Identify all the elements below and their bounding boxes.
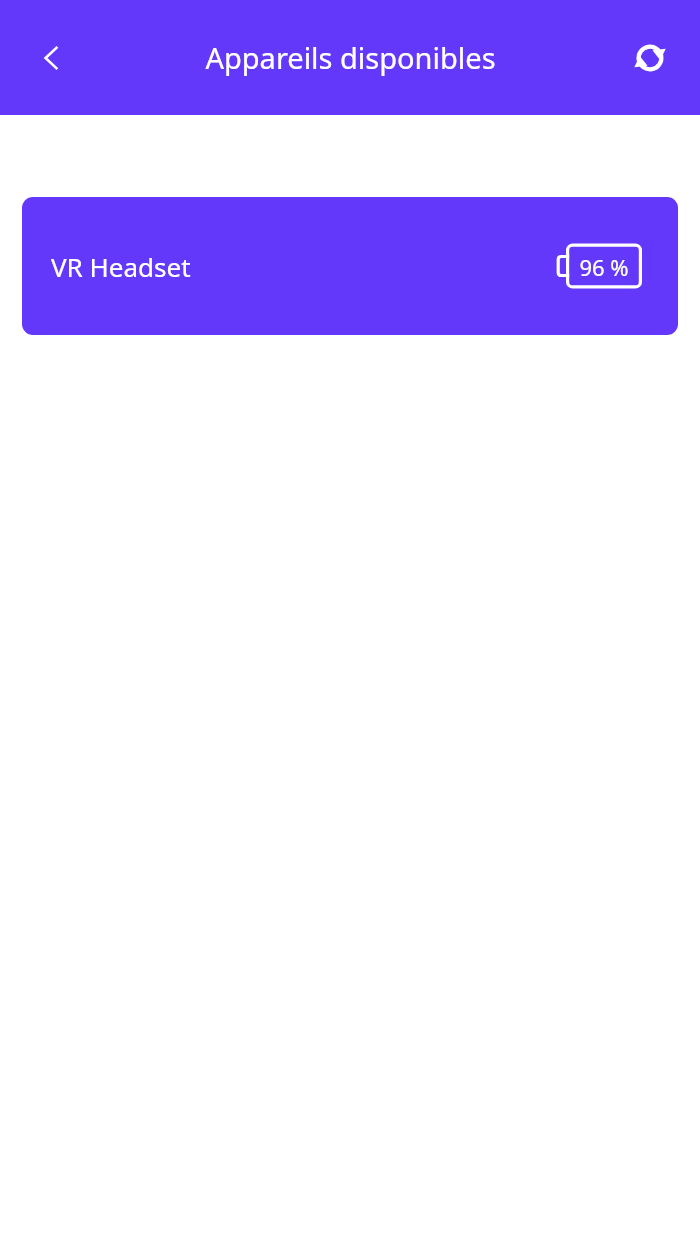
button[interactable]: VR Headset (22, 197, 678, 335)
button[interactable]: Refresh (622, 30, 678, 86)
staticText: Appareils disponibles (205, 38, 496, 77)
staticText: VR Headset (51, 249, 191, 284)
button[interactable]: Back (22, 29, 80, 87)
staticText: 96 % (579, 252, 629, 282)
